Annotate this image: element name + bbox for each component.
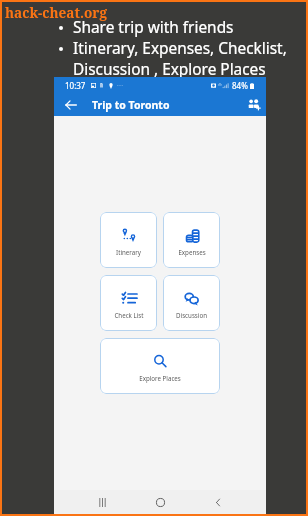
- staticText: Explore Places: [139, 374, 181, 382]
- staticText: Itinerary, Expenses, Checklist,: [73, 38, 287, 59]
- staticText: 84%: [232, 80, 248, 91]
- staticText: Itinerary: [116, 248, 141, 256]
- staticText: Discussion , Explore Places: [73, 59, 266, 80]
- button[interactable]: Back: [208, 492, 228, 512]
- staticText: Expenses: [178, 248, 206, 256]
- staticText: Trip to Toronto: [92, 98, 170, 112]
- staticText: Discussion: [176, 311, 207, 319]
- button[interactable]: Recents: [92, 492, 112, 512]
- button[interactable]: Back: [62, 96, 80, 114]
- button[interactable]: Itinerary: [100, 212, 157, 268]
- staticText: Share trip with friends: [73, 17, 234, 38]
- button[interactable]: Add people: [244, 95, 264, 115]
- staticText: hack-cheat.org: [5, 3, 107, 22]
- button[interactable]: Explore Places: [100, 338, 220, 394]
- staticText: 10:37: [65, 80, 86, 91]
- button[interactable]: Discussion: [163, 275, 220, 331]
- button[interactable]: Home: [150, 492, 170, 512]
- button[interactable]: Expenses: [163, 212, 220, 268]
- button[interactable]: Check List: [100, 275, 157, 331]
- staticText: Check List: [114, 311, 144, 319]
